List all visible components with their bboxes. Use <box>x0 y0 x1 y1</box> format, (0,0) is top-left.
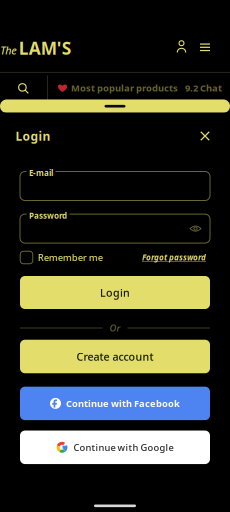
button[interactable]: Menu <box>193 35 217 59</box>
button[interactable]: Continue with Facebook <box>20 387 210 420</box>
button[interactable]: Account <box>169 34 193 58</box>
staticText: Continue with Google <box>73 441 173 453</box>
staticText: Or <box>109 322 120 334</box>
staticText: 9.2 Chat <box>185 82 222 94</box>
button[interactable]: Remember me <box>20 249 103 266</box>
button[interactable]: Close <box>193 124 217 148</box>
button[interactable]: Forgot password <box>142 250 206 265</box>
staticText: E-mail <box>29 168 53 178</box>
staticText: Create account <box>76 349 153 364</box>
button[interactable]: Create account <box>20 340 210 373</box>
button[interactable]: Continue with Google <box>20 431 210 464</box>
staticText: Forgot password <box>142 252 206 263</box>
staticText: Login <box>15 128 50 144</box>
staticText: Password <box>29 210 67 221</box>
staticText: Login <box>100 285 130 300</box>
staticText: LAM'S <box>19 36 72 59</box>
button[interactable]: Search <box>0 75 47 101</box>
button[interactable]: Login <box>20 276 210 309</box>
staticText: The <box>0 43 17 57</box>
staticText: Remember me <box>38 251 103 264</box>
staticText: Most popular products <box>71 82 178 94</box>
staticText: Continue with Facebook <box>66 397 180 410</box>
